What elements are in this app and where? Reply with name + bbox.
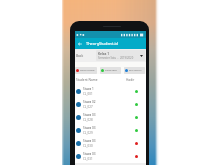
staticText: Semester Satu - 2019/2020 (98, 56, 134, 60)
staticText: Siswa 03 (83, 139, 96, 143)
staticText: CL_027 (83, 105, 93, 109)
button[interactable]: Back (76, 54, 84, 58)
button[interactable]: Siswa 02 (75, 98, 146, 111)
staticText: TIDAK HADIR (80, 69, 95, 72)
button[interactable]: Siswa 1 (75, 85, 146, 98)
button[interactable]: Siswa 03 (75, 137, 146, 150)
staticText: Siswa 03 (83, 152, 96, 156)
button[interactable]: TIDAK HADIR (75, 67, 97, 74)
staticText: Siswa 1 (83, 87, 94, 91)
button[interactable]: Siswa 03 (75, 124, 146, 137)
button[interactable]: Siswa 03 (75, 111, 146, 124)
staticText: COMPLETE (105, 69, 117, 72)
staticText: Siswa 03 (83, 113, 96, 117)
staticText: Student Name (76, 78, 98, 82)
staticText: Siswa 03 (83, 126, 96, 130)
staticText: Siswa 02 (83, 100, 96, 104)
staticText: CL_028 (83, 118, 93, 122)
button[interactable]: Back (75, 38, 146, 49)
staticText: Kelas 1 (98, 51, 110, 55)
button[interactable]: Siswa 03 (75, 150, 146, 163)
staticText: CL_029 (83, 131, 93, 135)
staticText: Hadir (126, 78, 135, 82)
staticText: CL_030 (83, 144, 93, 148)
staticText: CL_001 (83, 92, 93, 96)
button[interactable]: COMPLETE (100, 67, 121, 74)
staticText: SET STATUS (129, 69, 142, 72)
button[interactable]: Back (75, 38, 84, 49)
staticText: TheorgStudent.id (86, 41, 118, 46)
button[interactable]: Kelas 1 (96, 50, 145, 61)
staticText: CL_031 (83, 157, 93, 161)
button[interactable]: SET STATUS (124, 67, 145, 74)
